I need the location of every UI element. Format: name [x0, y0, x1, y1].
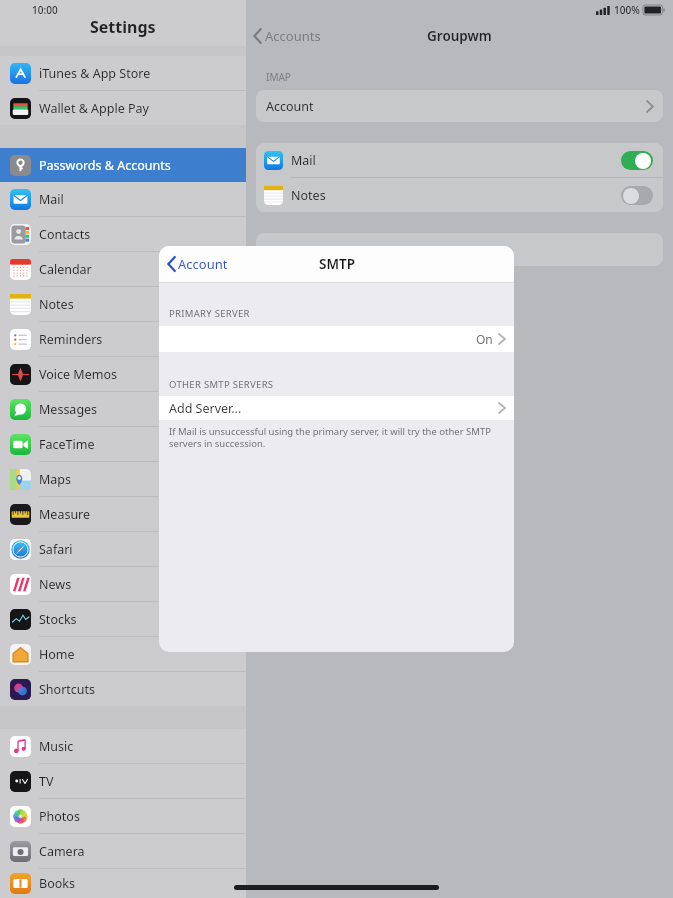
staticText: Measure — [39, 506, 91, 523]
button[interactable]: On — [159, 326, 514, 352]
staticText: Notes — [39, 296, 74, 313]
button[interactable]: News — [0, 567, 246, 601]
staticText: Wallet & Apple Pay — [39, 100, 149, 117]
button[interactable]: Books — [0, 869, 246, 898]
staticText: Mail — [39, 191, 64, 208]
button[interactable]: TV — [0, 764, 246, 798]
button[interactable]: Notes off — [621, 186, 653, 205]
staticText: News — [39, 576, 72, 593]
button[interactable]: Safari — [0, 532, 246, 566]
staticText: Photos — [39, 808, 80, 825]
button[interactable]: Camera — [0, 834, 246, 868]
button[interactable]: Maps — [0, 462, 246, 496]
staticText: Notes — [291, 187, 326, 204]
staticText: 100% — [614, 3, 640, 17]
button[interactable]: Measure — [0, 497, 246, 531]
staticText: iTunes & App Store — [39, 65, 151, 82]
staticText: FaceTime — [39, 436, 95, 453]
button[interactable]: Home — [0, 637, 246, 671]
button[interactable]: Accounts — [246, 27, 329, 45]
staticText: Camera — [39, 843, 85, 860]
button[interactable]: Mail — [256, 143, 663, 177]
staticText: IMAP — [266, 70, 291, 84]
button[interactable]: Contacts — [0, 217, 246, 251]
staticText: Mail — [291, 152, 316, 169]
staticText: On — [476, 331, 493, 347]
staticText: Account — [178, 255, 228, 273]
staticText: PRIMARY SERVER — [169, 307, 250, 320]
staticText: SMTP — [319, 255, 355, 273]
staticText: Messages — [39, 401, 98, 418]
staticText: Safari — [39, 541, 73, 558]
staticText: Shortcuts — [39, 681, 96, 698]
staticText: Home — [39, 646, 75, 663]
staticText: Groupwm — [427, 27, 492, 45]
staticText: TV — [39, 773, 54, 790]
button[interactable]: Shortcuts — [0, 672, 246, 706]
staticText: If Mail is unsuccessful using the primar… — [169, 425, 504, 450]
button[interactable]: Account — [256, 90, 663, 122]
button[interactable]: Reminders — [0, 322, 246, 356]
button[interactable]: Notes — [256, 178, 663, 212]
staticText: Music — [39, 738, 74, 755]
button[interactable]: Notes — [0, 287, 246, 321]
staticText: 10:00 — [32, 3, 58, 17]
button[interactable]: Music — [0, 729, 246, 763]
staticText: Settings — [90, 16, 156, 38]
staticText: Add Server... — [169, 400, 242, 417]
staticText: Maps — [39, 471, 72, 488]
staticText: Voice Memos — [39, 366, 117, 383]
button[interactable]: Passwords & Accounts — [0, 148, 246, 182]
staticText: Stocks — [39, 611, 77, 628]
staticText: Contacts — [39, 226, 91, 243]
staticText: Accounts — [265, 27, 321, 45]
button[interactable]: Stocks — [0, 602, 246, 636]
button[interactable]: Messages — [0, 392, 246, 426]
button[interactable]: Calendar — [0, 252, 246, 286]
staticText: Books — [39, 875, 75, 892]
button[interactable]: Photos — [0, 799, 246, 833]
staticText: Reminders — [39, 331, 103, 348]
button[interactable]: Add Server... — [159, 396, 514, 420]
button[interactable]: Voice Memos — [0, 357, 246, 391]
button[interactable]: FaceTime — [0, 427, 246, 461]
button[interactable]: Account — [159, 255, 236, 273]
button[interactable]: Mail — [0, 182, 246, 216]
button[interactable]: Wallet & Apple Pay — [0, 91, 246, 125]
button[interactable]: Mail on — [621, 151, 653, 170]
staticText: OTHER SMTP SERVERS — [169, 378, 274, 391]
staticText: Calendar — [39, 261, 92, 278]
staticText: Account — [266, 98, 314, 115]
button[interactable]: iTunes & App Store — [0, 56, 246, 90]
staticText: Passwords & Accounts — [39, 157, 171, 174]
